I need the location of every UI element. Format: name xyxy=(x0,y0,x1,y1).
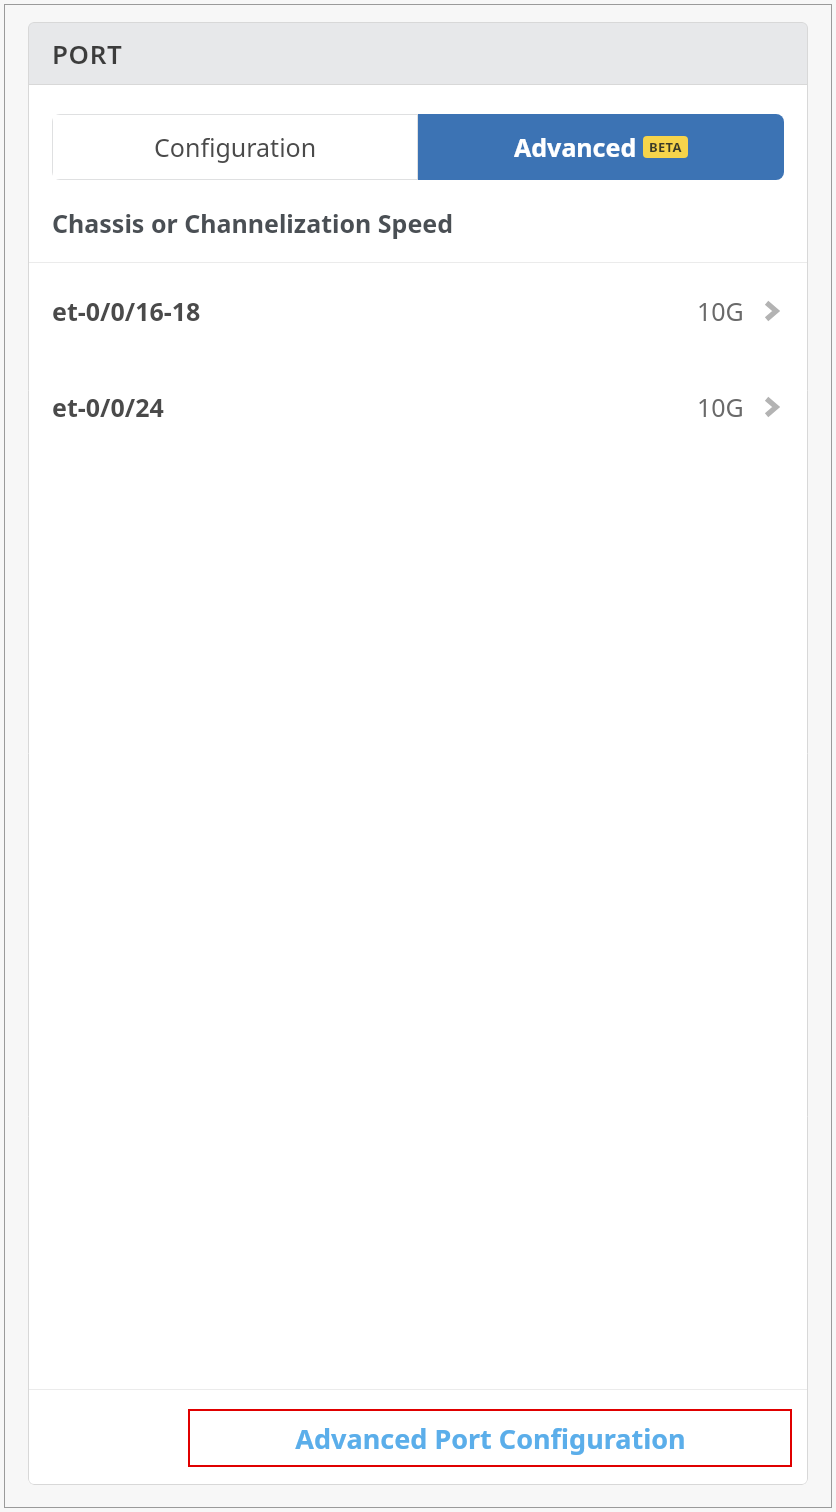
button[interactable]: et-0/0/16-18 xyxy=(28,263,808,359)
staticText: Advanced Port Configuration xyxy=(295,1420,686,1457)
other: Open et-0/0/24 xyxy=(758,394,784,420)
staticText: 10G xyxy=(697,390,744,424)
staticText: Chassis or Channelization Speed xyxy=(52,206,454,240)
staticText: 10G xyxy=(697,294,744,328)
staticText: et-0/0/16-18 xyxy=(52,294,201,328)
button[interactable]: et-0/0/24 xyxy=(28,359,808,455)
button[interactable]: Configuration xyxy=(52,114,418,180)
staticText: et-0/0/24 xyxy=(52,390,164,424)
staticText: PORT xyxy=(52,36,123,71)
staticText: BETA xyxy=(649,138,682,156)
button[interactable]: Advanced xyxy=(418,114,784,180)
staticText: Advanced xyxy=(514,130,637,164)
button[interactable]: Advanced Port Configuration xyxy=(188,1409,792,1467)
staticText: Configuration xyxy=(154,130,317,164)
other: Open et-0/0/16-18 xyxy=(758,298,784,324)
